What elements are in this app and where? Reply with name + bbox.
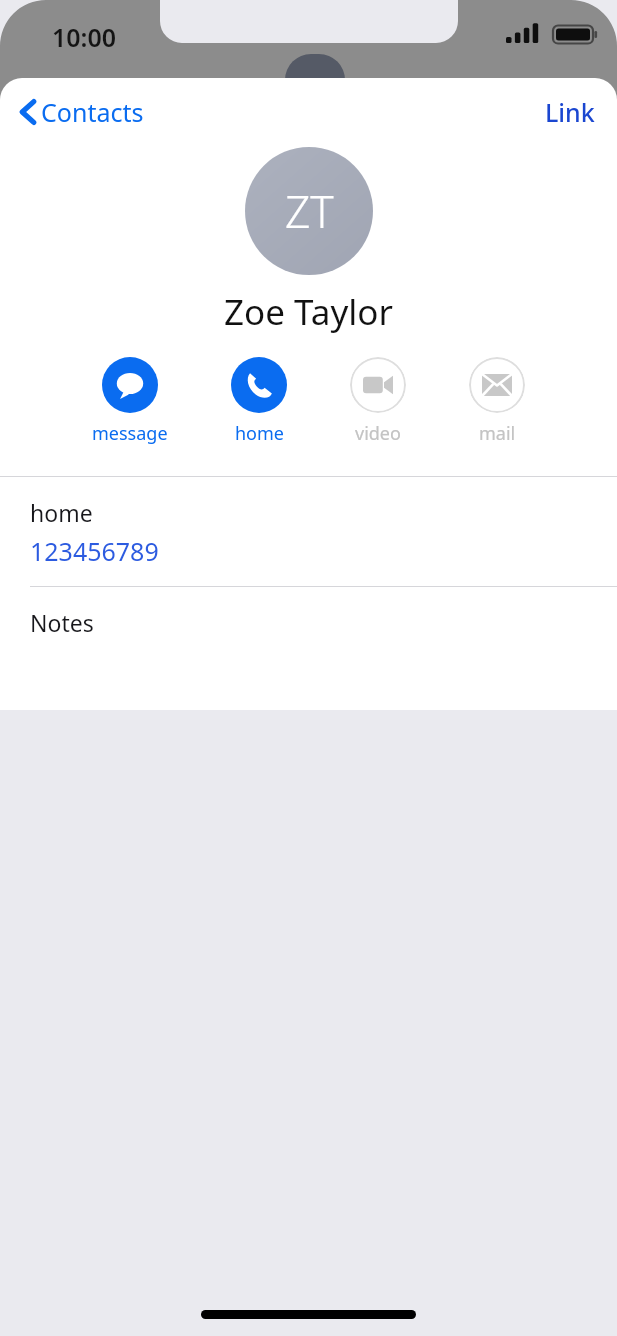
staticText: mail [479,421,516,446]
button[interactable]: video [350,357,406,446]
button[interactable]: home [231,357,287,446]
button[interactable]: message [92,357,168,446]
staticText: home [235,421,284,446]
staticText: Zoe Taylor [0,288,617,336]
staticText: 123456789 [30,534,159,568]
staticText: ZT [285,181,334,241]
staticText: video [355,421,401,446]
button[interactable]: home [0,477,617,586]
staticText: Link [545,95,595,129]
staticText: Notes [30,607,94,638]
button[interactable]: mail [469,357,525,446]
button[interactable]: Contact photo [245,147,373,275]
button[interactable]: Notes [0,587,617,656]
staticText: home [30,497,93,528]
staticText: message [92,421,168,446]
button[interactable]: Contacts [14,89,150,135]
button[interactable]: Link [539,89,601,135]
staticText: Contacts [41,95,144,129]
staticText: 10:00 [52,20,117,54]
